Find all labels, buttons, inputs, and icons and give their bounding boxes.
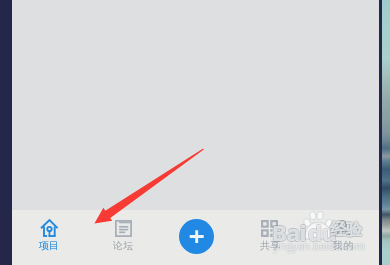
staticText: 经验 — [330, 219, 362, 239]
button[interactable]: 我的 — [306, 210, 379, 265]
staticText: du — [309, 217, 338, 247]
staticText: jingyan.baidu.com — [273, 239, 364, 253]
button[interactable]: 共享 — [233, 210, 306, 265]
staticText: 经验 — [329, 221, 361, 241]
staticText: 经验 — [330, 221, 362, 241]
staticText: Bai — [273, 217, 308, 247]
staticText: 经验 — [330, 220, 362, 240]
staticText: du — [309, 216, 338, 246]
staticText: jingyan.baidu.com — [274, 238, 365, 252]
staticText: du — [308, 216, 337, 246]
button[interactable]: 论坛 — [86, 210, 160, 265]
staticText: 我的 — [333, 239, 353, 252]
staticText: Bai — [271, 216, 306, 246]
staticText: du — [307, 216, 336, 246]
button[interactable]: 项目 — [12, 210, 86, 265]
staticText: jingyan.baidu.com — [273, 240, 364, 254]
staticText: Bai — [273, 218, 308, 248]
staticText: Bai — [273, 216, 308, 246]
staticText: Bai — [272, 217, 307, 247]
staticText: Bai — [271, 218, 306, 248]
staticText: du — [308, 217, 337, 247]
staticText: 经验 — [329, 220, 361, 240]
staticText: jingyan.baidu.com — [273, 238, 364, 252]
staticText: 论坛 — [113, 239, 133, 252]
staticText: Bai — [271, 217, 306, 247]
staticText: du — [309, 218, 338, 248]
button[interactable]: Add new project — [179, 219, 214, 254]
staticText: 经验 — [329, 219, 361, 239]
staticText: jingyan.baidu.com — [274, 240, 365, 254]
staticText: du — [307, 217, 336, 247]
staticText: 经验 — [331, 221, 363, 241]
staticText: jingyan.baidu.com — [275, 240, 366, 254]
staticText: jingyan.baidu.com — [275, 238, 366, 252]
staticText: 经验 — [331, 220, 363, 240]
staticText: Bai — [272, 218, 307, 248]
staticText: Bai — [272, 216, 307, 246]
staticText: 经验 — [331, 219, 363, 239]
staticText: 项目 — [39, 239, 59, 252]
staticText: jingyan.baidu.com — [275, 239, 366, 253]
staticText: jingyan.baidu.com — [274, 239, 365, 253]
staticText: 共享 — [260, 239, 280, 252]
staticText: du — [308, 218, 337, 248]
staticText: du — [307, 218, 336, 248]
